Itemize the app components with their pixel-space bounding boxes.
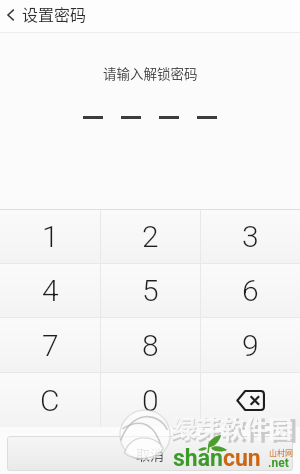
staticText: C — [40, 383, 60, 418]
button[interactable]: 6 — [201, 264, 300, 317]
staticText: 取消 — [136, 444, 164, 464]
staticText: 绿芽软件园 — [172, 411, 298, 447]
staticText: 3 — [242, 219, 259, 254]
staticText: 0 — [142, 383, 159, 418]
button[interactable]: 0 — [101, 373, 200, 427]
button[interactable]: Back — [0, 0, 22, 33]
button[interactable]: 4 — [0, 264, 100, 317]
button[interactable]: 1 — [0, 210, 100, 263]
staticText: 9 — [242, 328, 259, 363]
button[interactable]: 7 — [0, 318, 100, 372]
button[interactable]: 3 — [201, 210, 300, 263]
button[interactable]: Backspace — [201, 373, 300, 427]
staticText: .net — [268, 456, 289, 470]
button[interactable]: 取消 — [7, 436, 293, 471]
staticText: 绿芽软件园 — [172, 410, 292, 445]
other: Backspace — [201, 373, 300, 427]
staticText: 1 — [42, 219, 59, 254]
button[interactable]: 2 — [101, 210, 200, 263]
button[interactable]: 9 — [201, 318, 300, 372]
staticText: 山村网 — [269, 447, 293, 459]
staticText: 设置密码 — [22, 2, 87, 25]
staticText: 4 — [42, 273, 59, 308]
staticText: cun — [223, 445, 261, 472]
button[interactable]: 5 — [101, 264, 200, 317]
staticText: 7 — [42, 328, 59, 363]
staticText: 5 — [142, 273, 159, 308]
staticText: 请输入解锁密码 — [103, 63, 198, 83]
staticText: shan — [173, 445, 223, 472]
staticText: 2 — [142, 219, 159, 254]
staticText: 6 — [242, 273, 259, 308]
button[interactable]: 8 — [101, 318, 200, 372]
staticText: 8 — [142, 328, 159, 363]
button[interactable]: C — [0, 373, 100, 427]
